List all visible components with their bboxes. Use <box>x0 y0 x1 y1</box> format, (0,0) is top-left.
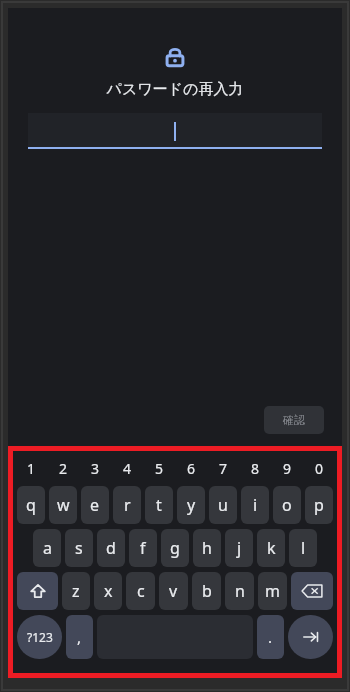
staticText: k <box>267 537 276 559</box>
button[interactable]: x <box>94 572 122 610</box>
button[interactable]: 4 <box>111 454 143 482</box>
staticText: i <box>253 494 258 516</box>
staticText: n <box>235 580 245 602</box>
button[interactable]: 確認 <box>264 406 324 434</box>
staticText: r <box>124 494 131 516</box>
staticText: 7 <box>219 459 228 478</box>
staticText: z <box>72 580 80 602</box>
staticText: d <box>106 537 116 559</box>
staticText: p <box>314 494 324 516</box>
staticText: m <box>265 580 280 602</box>
staticText: 5 <box>155 459 164 478</box>
button[interactable]: z <box>62 572 90 610</box>
staticText: b <box>202 580 212 602</box>
staticText: y <box>187 494 196 516</box>
staticText: u <box>218 494 228 516</box>
staticText: h <box>202 537 212 559</box>
button[interactable]: Enter <box>288 615 333 659</box>
staticText: 4 <box>123 459 132 478</box>
button[interactable]: 7 <box>207 454 239 482</box>
button[interactable]: e <box>81 486 109 524</box>
button[interactable]: 1 <box>15 454 47 482</box>
button[interactable]: t <box>145 486 173 524</box>
staticText: x <box>104 580 113 602</box>
staticText: c <box>137 580 145 602</box>
button[interactable]: 3 <box>79 454 111 482</box>
button[interactable]: Shift <box>17 572 58 610</box>
button[interactable]: n <box>225 572 254 610</box>
button[interactable]: ?123 <box>17 615 62 659</box>
staticText: t <box>156 494 162 516</box>
button[interactable]: v <box>159 572 188 610</box>
button[interactable]: 2 <box>47 454 79 482</box>
staticText: v <box>169 580 178 602</box>
staticText: ?123 <box>27 629 53 645</box>
button[interactable]: p <box>305 486 333 524</box>
button[interactable]: r <box>113 486 141 524</box>
button[interactable]: s <box>65 529 93 567</box>
button[interactable]: d <box>97 529 125 567</box>
staticText: , <box>77 627 82 647</box>
button[interactable]: a <box>33 529 61 567</box>
button[interactable]: , <box>66 615 93 659</box>
staticText: f <box>140 537 146 559</box>
button[interactable] <box>28 113 322 149</box>
staticText: w <box>57 494 70 516</box>
staticText: 確認 <box>283 413 305 427</box>
button[interactable]: q <box>17 486 45 524</box>
staticText: 6 <box>187 459 196 478</box>
button[interactable]: y <box>177 486 205 524</box>
button[interactable]: Backspace <box>291 572 333 610</box>
staticText: l <box>301 537 306 559</box>
button[interactable]: f <box>129 529 157 567</box>
button[interactable]: h <box>193 529 221 567</box>
staticText: . <box>268 627 273 647</box>
button[interactable]: b <box>192 572 221 610</box>
button[interactable]: l <box>289 529 317 567</box>
button[interactable]: u <box>209 486 237 524</box>
staticText: o <box>282 494 292 516</box>
button[interactable]: m <box>258 572 287 610</box>
button[interactable]: 6 <box>175 454 207 482</box>
staticText: 0 <box>315 459 324 478</box>
staticText: 3 <box>91 459 100 478</box>
button[interactable]: 5 <box>143 454 175 482</box>
button[interactable]: 9 <box>271 454 303 482</box>
button[interactable]: c <box>126 572 155 610</box>
staticText: e <box>90 494 100 516</box>
button[interactable]: o <box>273 486 301 524</box>
staticText: パスワードの再入力 <box>8 80 342 99</box>
button[interactable]: 0 <box>303 454 335 482</box>
button[interactable]: j <box>225 529 253 567</box>
staticText: 9 <box>283 459 292 478</box>
staticText: j <box>237 537 242 559</box>
button[interactable]: g <box>161 529 189 567</box>
button[interactable]: k <box>257 529 285 567</box>
staticText: g <box>170 537 180 559</box>
button[interactable]: w <box>49 486 77 524</box>
button[interactable]: i <box>241 486 269 524</box>
button[interactable]: 8 <box>239 454 271 482</box>
button[interactable]: . <box>257 615 284 659</box>
staticText: a <box>43 537 52 559</box>
staticText: q <box>26 494 36 516</box>
staticText: 8 <box>251 459 260 478</box>
staticText: 2 <box>59 459 68 478</box>
staticText: s <box>75 537 83 559</box>
staticText: 1 <box>27 459 36 478</box>
